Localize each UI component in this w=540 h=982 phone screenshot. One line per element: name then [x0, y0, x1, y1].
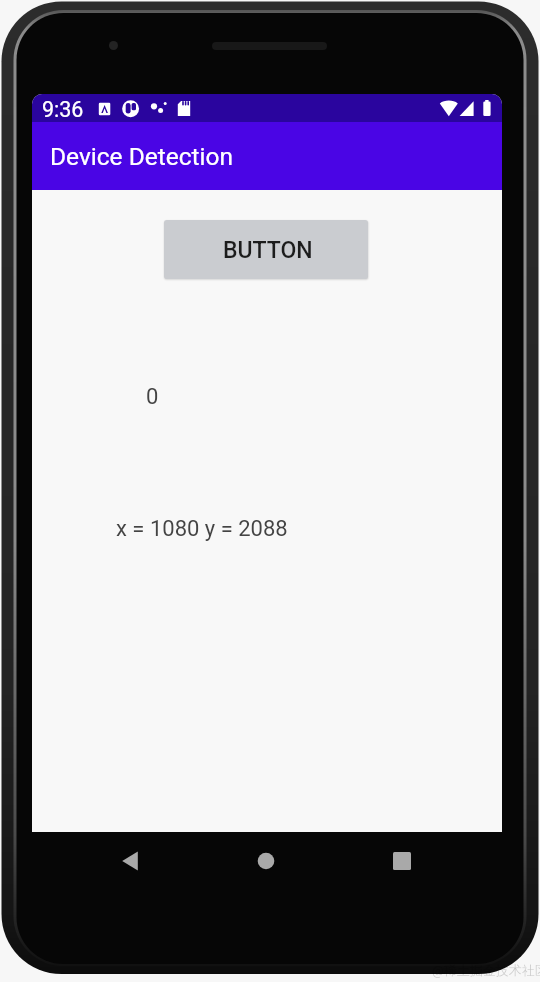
button[interactable]: Home [244, 839, 288, 883]
button[interactable]: Recent apps [380, 839, 424, 883]
staticText: @稀土掘金技术社区 [432, 962, 540, 978]
staticText: BUTTON [223, 237, 313, 264]
button[interactable]: BUTTON [164, 220, 368, 279]
button[interactable]: Back [108, 839, 152, 883]
staticText: 0 [146, 384, 159, 410]
staticText: 9:36 [42, 97, 84, 122]
staticText: x = 1080 y = 2088 [116, 516, 288, 542]
staticText: Device Detection [50, 142, 234, 171]
